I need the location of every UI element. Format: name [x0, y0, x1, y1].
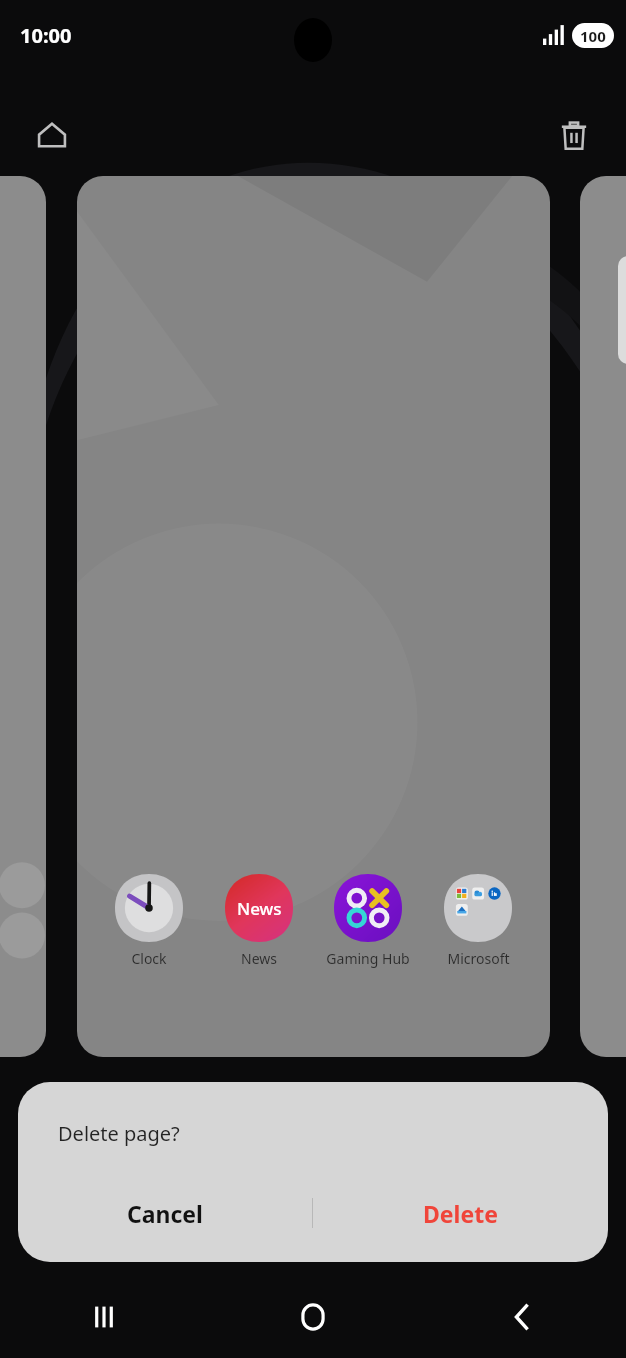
button[interactable]: Delete page [546, 108, 602, 164]
staticText: 10:00 [20, 22, 72, 49]
button[interactable]: Cancel [18, 1178, 312, 1248]
staticText: Cancel [127, 1198, 203, 1229]
staticText: Microsoft [447, 949, 510, 968]
staticText: 100 [580, 26, 606, 46]
button[interactable]: News [209, 872, 309, 968]
button[interactable]: Home [208, 1276, 417, 1358]
button[interactable]: Microsoft [428, 872, 528, 968]
button[interactable]: Recent apps [0, 1276, 208, 1358]
staticText: Delete page? [58, 1120, 180, 1147]
button[interactable]: Set as home screen [24, 108, 80, 164]
staticText: News [241, 949, 277, 968]
staticText: News [237, 897, 282, 920]
button[interactable]: Clock [77, 176, 550, 1057]
button[interactable]: Delete [313, 1178, 608, 1248]
staticText: Delete [423, 1198, 498, 1229]
button[interactable] [0, 176, 46, 1057]
staticText: Gaming Hub [326, 949, 410, 968]
button[interactable] [580, 176, 626, 1057]
button[interactable]: Back [417, 1276, 626, 1358]
button[interactable]: Gaming Hub [318, 872, 418, 968]
staticText: Clock [131, 949, 167, 968]
button[interactable]: Clock [99, 872, 199, 968]
